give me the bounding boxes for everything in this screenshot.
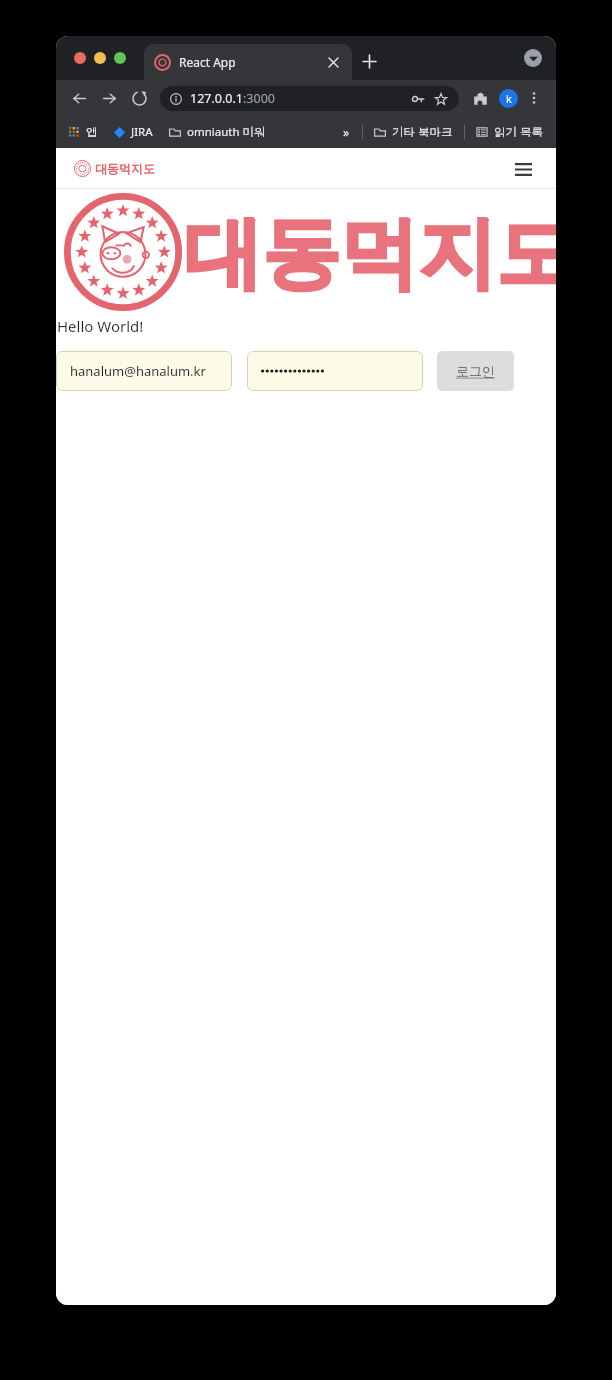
button[interactable]: 읽기 목록 <box>474 121 545 143</box>
staticText: 127.0.0.1 <box>190 90 243 107</box>
button[interactable]: Profile <box>499 89 518 108</box>
button[interactable]: Saved passwords <box>409 90 426 107</box>
button[interactable]: New tab <box>356 48 382 74</box>
staticText: 로그인 <box>456 363 495 379</box>
button[interactable]: Extensions <box>469 87 491 109</box>
button[interactable]: React App <box>144 44 352 80</box>
staticText: » <box>343 124 350 140</box>
button[interactable]: Maximize window <box>114 52 126 64</box>
staticText: :3000 <box>243 90 275 107</box>
button[interactable]: Close tab <box>325 54 341 70</box>
staticText: Hello World! <box>57 316 144 336</box>
staticText: hanalum@hanalum.kr <box>70 362 206 380</box>
staticText: 대동먹지도 <box>184 205 556 303</box>
button[interactable]: 대동먹지도 <box>74 160 155 177</box>
staticText: 앱 <box>86 125 98 139</box>
button[interactable]: 로그인 <box>437 351 514 391</box>
button[interactable]: hanalum@hanalum.kr <box>56 351 232 391</box>
staticText: 대동먹지도 <box>95 161 155 176</box>
button[interactable]: 기타 북마크 <box>372 121 455 143</box>
button[interactable]: JIRA <box>112 121 155 143</box>
staticText: 읽기 목록 <box>494 124 543 140</box>
button[interactable] <box>247 351 423 391</box>
staticText: k <box>506 91 512 106</box>
button[interactable]: Customize and control Chrome <box>524 88 544 108</box>
staticText: 기타 북마크 <box>392 124 453 140</box>
button[interactable]: 127.0.0.1 <box>160 86 459 111</box>
button[interactable]: Back <box>68 87 90 109</box>
staticText: React App <box>179 54 325 70</box>
button[interactable]: 앱 <box>67 122 100 142</box>
staticText: omniauth 미워 <box>187 124 266 140</box>
button[interactable]: Bookmark this tab <box>432 90 449 107</box>
button[interactable]: Minimize window <box>94 52 106 64</box>
button[interactable]: More bookmarks <box>337 123 355 141</box>
button[interactable]: Menu <box>510 156 536 182</box>
button[interactable]: omniauth 미워 <box>167 121 268 143</box>
button[interactable]: Forward <box>98 87 120 109</box>
staticText: JIRA <box>131 124 153 140</box>
button[interactable]: Reload <box>128 87 150 109</box>
button[interactable]: Search tabs <box>524 49 542 67</box>
button[interactable]: Close window <box>74 52 86 64</box>
